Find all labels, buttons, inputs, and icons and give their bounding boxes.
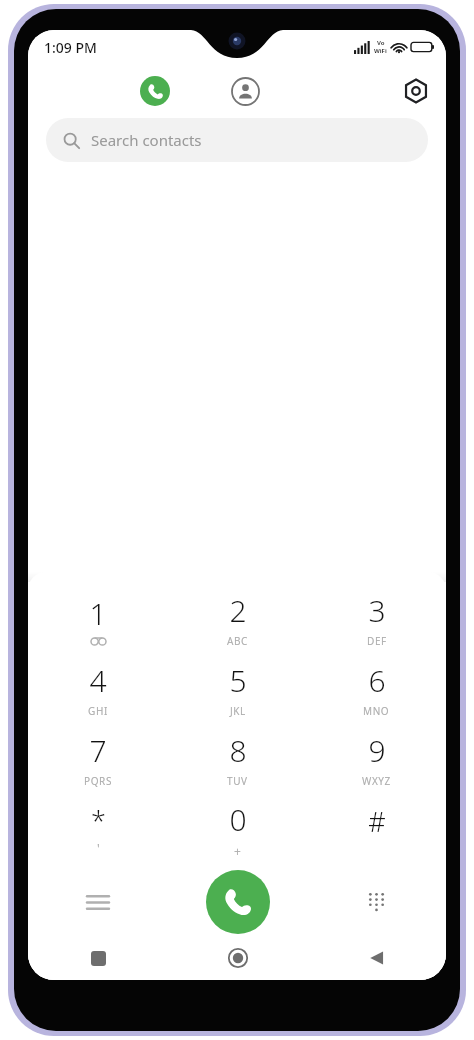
button[interactable]: 8 xyxy=(168,724,307,794)
staticText: PQRS xyxy=(84,774,112,788)
staticText: TUV xyxy=(227,774,248,788)
button[interactable]: Home xyxy=(168,936,307,980)
button[interactable]: Recents xyxy=(28,936,168,980)
staticText: 4 xyxy=(89,660,107,701)
button[interactable]: Search contacts xyxy=(46,118,428,162)
staticText: # xyxy=(368,803,386,840)
staticText: WiFi xyxy=(374,47,387,55)
button[interactable]: 1 xyxy=(28,584,168,654)
button[interactable]: 4 xyxy=(28,654,168,724)
staticText: 9 xyxy=(368,730,386,771)
button[interactable]: Contacts xyxy=(221,67,269,115)
button[interactable]: Keypad xyxy=(307,864,446,940)
staticText: + xyxy=(234,843,242,859)
button[interactable]: Call xyxy=(206,870,270,934)
button[interactable]: Settings xyxy=(394,69,438,113)
staticText: 5 xyxy=(229,660,247,701)
staticText: ABC xyxy=(227,634,249,648)
staticText: 1 xyxy=(89,593,107,634)
staticText: JKL xyxy=(230,704,246,718)
staticText: 2 xyxy=(229,590,247,631)
staticText: GHI xyxy=(88,704,108,718)
button[interactable]: Dialer xyxy=(131,67,179,115)
staticText: * xyxy=(91,802,106,839)
staticText: WXYZ xyxy=(362,774,391,788)
staticText: 6 xyxy=(368,660,386,701)
staticText: 7 xyxy=(89,730,107,771)
staticText: 3 xyxy=(368,590,386,631)
staticText: 1:09 PM xyxy=(44,38,97,57)
button[interactable]: 7 xyxy=(28,724,168,794)
staticText: ' xyxy=(97,840,101,856)
staticText: MNO xyxy=(363,704,390,718)
staticText: Search contacts xyxy=(91,130,202,150)
staticText: 8 xyxy=(229,730,247,771)
button[interactable]: 9 xyxy=(307,724,446,794)
button[interactable]: 3 xyxy=(307,584,446,654)
button[interactable]: 6 xyxy=(307,654,446,724)
staticText: DEF xyxy=(367,634,387,648)
staticText: Vo xyxy=(377,39,385,47)
button[interactable]: Call log xyxy=(28,864,168,940)
button[interactable]: 5 xyxy=(168,654,307,724)
button[interactable]: 0 xyxy=(168,794,307,864)
staticText: 0 xyxy=(229,799,247,840)
button[interactable]: 2 xyxy=(168,584,307,654)
button[interactable]: # xyxy=(307,794,446,864)
button[interactable]: Back xyxy=(307,936,446,980)
button[interactable]: * xyxy=(28,794,168,864)
